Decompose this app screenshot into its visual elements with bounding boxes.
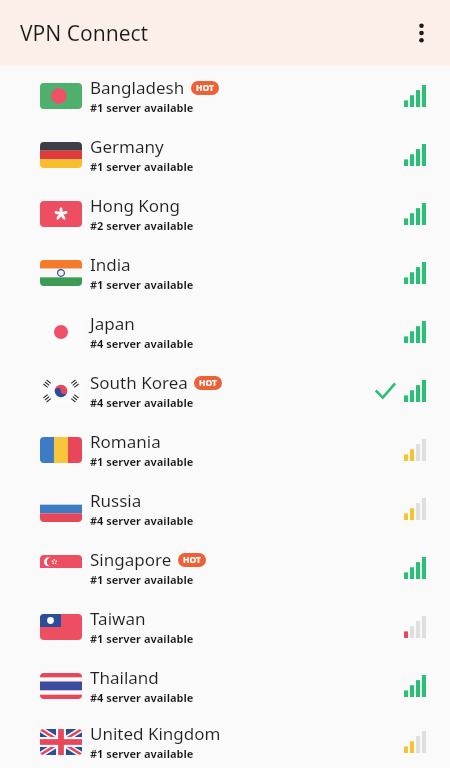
staticText: Bangladesh xyxy=(90,76,185,99)
button[interactable]: Taiwan xyxy=(0,597,450,656)
staticText: #1 server available xyxy=(90,572,194,587)
staticText: #1 server available xyxy=(90,631,194,646)
button[interactable]: Bangladesh xyxy=(0,66,450,125)
staticText: #4 server available xyxy=(90,336,194,351)
staticText: #4 server available xyxy=(90,513,194,528)
button[interactable]: Russia xyxy=(0,479,450,538)
staticText: #1 server available xyxy=(90,454,194,469)
staticText: HOT xyxy=(199,377,217,389)
staticText: Taiwan xyxy=(90,607,146,630)
staticText: Hong Kong xyxy=(90,194,181,217)
staticText: HOT xyxy=(183,554,201,566)
staticText: United Kingdom xyxy=(90,722,221,745)
staticText: Japan xyxy=(90,312,135,335)
staticText: #1 server available xyxy=(90,100,194,115)
staticText: Thailand xyxy=(90,666,159,689)
staticText: India xyxy=(90,253,131,276)
button[interactable]: Romania xyxy=(0,420,450,479)
button[interactable]: Germany xyxy=(0,125,450,184)
staticText: #4 server available xyxy=(90,690,194,705)
staticText: #4 server available xyxy=(90,395,194,410)
staticText: #1 server available xyxy=(90,159,194,174)
button[interactable]: Japan xyxy=(0,302,450,361)
button[interactable]: Thailand xyxy=(0,656,450,715)
button[interactable]: More options xyxy=(404,16,438,50)
staticText: #2 server available xyxy=(90,218,194,233)
staticText: Russia xyxy=(90,489,142,512)
staticText: HOT xyxy=(196,82,214,94)
button[interactable]: United Kingdom xyxy=(0,715,450,768)
button[interactable]: Hong Kong xyxy=(0,184,450,243)
staticText: VPN Connect xyxy=(20,19,149,48)
button[interactable]: Singapore xyxy=(0,538,450,597)
staticText: Singapore xyxy=(90,548,172,571)
staticText: #1 server available xyxy=(90,277,194,292)
button[interactable]: India xyxy=(0,243,450,302)
staticText: Germany xyxy=(90,135,164,158)
staticText: South Korea xyxy=(90,371,188,394)
staticText: #1 server available xyxy=(90,746,194,761)
button[interactable]: South Korea xyxy=(0,361,450,420)
staticText: Romania xyxy=(90,430,161,453)
